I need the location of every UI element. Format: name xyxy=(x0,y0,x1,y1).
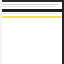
button[interactable] xyxy=(2,16,62,18)
